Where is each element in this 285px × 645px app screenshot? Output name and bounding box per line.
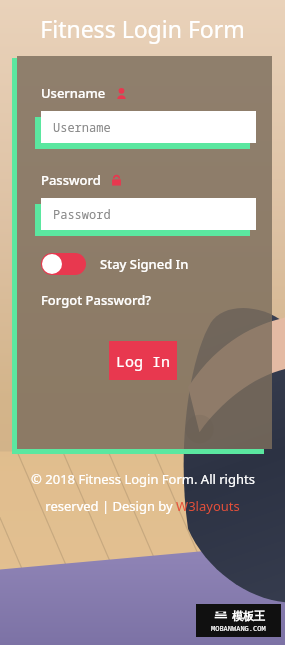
button[interactable]: Password [41,198,256,230]
staticText: Password [41,171,101,189]
button[interactable]: Forgot Password? [41,291,152,309]
staticText: © 2018 Fitness Login Form. All rights [31,470,255,488]
staticText: 模板王 [232,609,265,623]
button[interactable]: Username [41,111,256,143]
staticText: reserved | Design by W3layouts [45,497,240,515]
staticText: Forgot Password? [41,291,152,309]
staticText: Fitness Login Form [0,13,285,44]
staticText: Log In [116,351,171,371]
staticText: Stay Signed In [100,255,189,273]
other: User [116,88,127,99]
staticText: Password [53,206,111,222]
button[interactable]: Log In [109,341,177,380]
button[interactable]: Stay Signed In [41,253,189,275]
staticText: Username [53,119,111,135]
staticText: MOBANWANG.COM [211,624,266,634]
other: Lock [111,175,122,186]
staticText: Username [41,84,106,102]
